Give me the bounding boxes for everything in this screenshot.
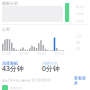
staticText: 22:00 [2, 52, 11, 56]
staticText: 04:00 [37, 52, 46, 56]
staticText: 最近7天平均入睡时间 02:00-08:00 [2, 79, 51, 82]
staticText: 4小时 [76, 12, 84, 16]
staticText: 健康记录 [10, 86, 22, 90]
staticText: 8小时 [76, 5, 84, 9]
staticText: 07:00 [55, 52, 64, 56]
staticText: 深度睡眠 [2, 61, 18, 66]
staticText: 0分钟 [42, 64, 60, 73]
staticText: 清醒时长 [42, 61, 58, 66]
staticText: 40 [76, 47, 80, 51]
staticText: 80 [76, 41, 80, 45]
staticText: 0小时 [76, 19, 84, 23]
staticText: 睡眠分析 [2, 1, 18, 6]
staticText: 120 [76, 35, 82, 39]
button[interactable]: 查看更多 [72, 78, 86, 83]
staticText: 01:00 [20, 52, 29, 56]
staticText: 43分钟 [2, 64, 24, 73]
staticText: 查看更多 [74, 76, 86, 85]
staticText: 心率 [2, 27, 10, 32]
